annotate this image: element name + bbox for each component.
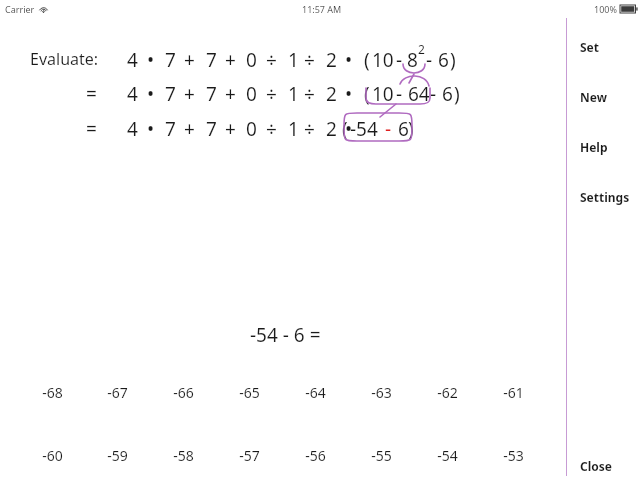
staticText: 64 [408,81,430,107]
button[interactable]: -57 [222,443,276,467]
staticText: 1 [288,47,299,73]
staticText: 7 [165,81,176,107]
staticText: Set [580,39,599,55]
button[interactable]: -65 [222,380,276,404]
staticText: 11:57 AM [302,3,342,15]
staticText: -56 [305,446,326,465]
button[interactable]: -58 [156,443,210,467]
button[interactable]: -61 [486,380,540,404]
staticText: ÷ [266,116,277,142]
staticText: 6 [442,81,453,107]
staticText: 4 [127,47,138,73]
staticText: -53 [503,446,524,465]
staticText: Help [580,139,608,155]
staticText: • [345,81,353,107]
button[interactable]: Close [570,455,643,477]
staticText: 2 [326,116,337,142]
staticText: -55 [371,446,392,465]
staticText: + [225,47,236,73]
button[interactable]: -59 [90,443,144,467]
staticText: - [396,47,403,73]
staticText: 10 [372,81,394,107]
staticText: 7 [206,81,217,107]
button[interactable]: -62 [420,380,474,404]
staticText: 0 [246,81,257,107]
staticText: • [345,47,353,73]
staticText: + [184,81,195,107]
staticText: = [86,116,97,142]
staticText: -68 [42,383,63,402]
staticText: New [580,89,607,105]
staticText: ( [364,47,370,73]
staticText: Evaluate: [30,48,99,70]
staticText: 10 [372,47,394,73]
staticText: ) [454,81,460,107]
staticText: -61 [503,383,524,402]
button[interactable]: -64 [288,380,342,404]
staticText: -65 [239,383,260,402]
staticText: -66 [173,383,194,402]
staticText: -57 [239,446,260,465]
button[interactable]: -54 [420,443,474,467]
staticText: 2 [418,41,425,57]
staticText: 1 [288,116,299,142]
staticText: 7 [206,116,217,142]
staticText: - [426,47,433,73]
staticText: Settings [580,189,630,205]
staticText: ÷ [266,81,277,107]
staticText: -60 [42,446,63,465]
staticText: 4 [127,116,138,142]
button[interactable]: -67 [90,380,144,404]
staticText: 7 [206,47,217,73]
button[interactable]: -60 [25,443,79,467]
staticText: ) [450,47,456,73]
staticText: ÷ [304,47,315,73]
staticText: -64 [305,383,326,402]
button[interactable]: New [570,86,643,108]
button[interactable]: -68 [25,380,79,404]
staticText: 6 [438,47,449,73]
button[interactable]: -53 [486,443,540,467]
staticText: + [225,81,236,107]
staticText: ) [408,116,414,142]
staticText: + [184,116,195,142]
staticText: Close [580,458,612,474]
button[interactable]: -66 [156,380,210,404]
button[interactable]: Help [570,136,643,158]
staticText: 8 [407,47,418,73]
staticText: - [396,81,403,107]
staticText: ( [364,81,370,107]
staticText: = [86,81,97,107]
staticText: + [225,116,236,142]
staticText: • [147,116,155,142]
staticText: 7 [165,116,176,142]
button[interactable]: -56 [288,443,342,467]
staticText: -54 [437,446,458,465]
staticText: -54 - 6 = [250,322,321,348]
staticText: -62 [437,383,458,402]
staticText: - [385,116,392,142]
button[interactable]: -63 [354,380,408,404]
staticText: -59 [107,446,128,465]
staticText: -67 [107,383,128,402]
button[interactable]: Settings [570,186,643,208]
staticText: 7 [165,47,176,73]
staticText: 1 [288,81,299,107]
staticText: • [345,116,353,142]
staticText: -58 [173,446,194,465]
staticText: 2 [326,81,337,107]
staticText: Carrier [5,3,35,15]
button[interactable]: -55 [354,443,408,467]
staticText: ÷ [304,81,315,107]
staticText: + [184,47,195,73]
staticText: -54 [350,116,378,142]
staticText: -63 [371,383,392,402]
staticText: 2 [326,47,337,73]
staticText: 100% [594,3,617,15]
staticText: 0 [246,116,257,142]
staticText: - [430,81,437,107]
button[interactable]: Set [570,36,643,58]
staticText: ( [342,116,348,142]
staticText: ÷ [266,47,277,73]
staticText: • [147,47,155,73]
